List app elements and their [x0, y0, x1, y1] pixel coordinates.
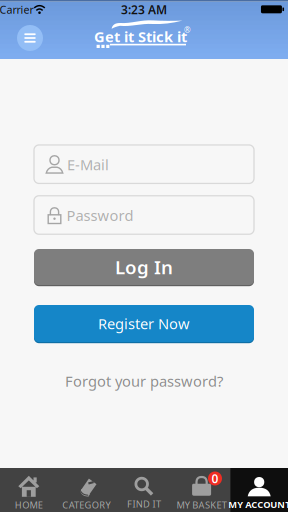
staticText: ® [184, 25, 191, 35]
staticText: E-Mail [67, 155, 109, 174]
staticText: Get it Stick it [94, 27, 187, 46]
button[interactable]: MY ACCOUNT [230, 472, 288, 512]
staticText: 0 [211, 470, 218, 486]
button[interactable]: Menu [15, 23, 45, 53]
staticText: 3:23 AM [121, 1, 167, 17]
staticText: MY ACCOUNT [228, 498, 288, 511]
button[interactable]: Forgot your password? [65, 371, 223, 391]
button[interactable]: E-Mail [34, 145, 254, 183]
staticText: CATEGORY [62, 499, 110, 511]
button[interactable]: MY BASKET [173, 472, 230, 512]
staticText: FIND IT [127, 498, 161, 510]
staticText: Carrier [0, 2, 33, 17]
button[interactable]: Password [34, 196, 254, 234]
button[interactable]: Log In [34, 249, 254, 285]
button[interactable]: CATEGORY [58, 472, 115, 512]
staticText: HOME [15, 499, 43, 511]
staticText: Forgot your password? [65, 371, 223, 391]
staticText: MY BASKET [176, 499, 227, 511]
button[interactable]: HOME [0, 472, 58, 512]
button[interactable]: FIND IT [115, 472, 173, 512]
staticText: Log In [115, 255, 173, 279]
button[interactable]: Register Now [34, 305, 254, 342]
staticText: Password [66, 205, 133, 225]
staticText: Register Now [98, 314, 190, 333]
